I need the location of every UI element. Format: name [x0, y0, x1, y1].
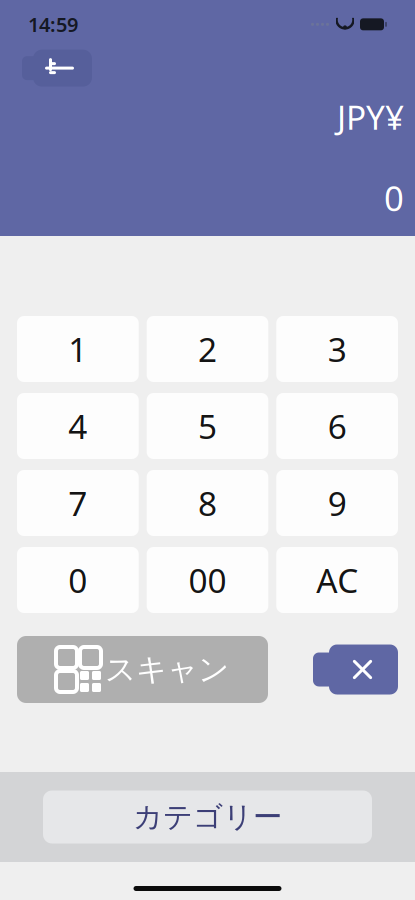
button[interactable]: カテゴリー [43, 790, 372, 843]
staticText: 2 [198, 327, 217, 371]
button[interactable]: Back [19, 50, 92, 87]
button[interactable]: 5 [147, 393, 268, 459]
staticText: AC [316, 558, 358, 602]
staticText: スキャン [105, 651, 229, 688]
button[interactable]: 0 [17, 547, 139, 613]
button[interactable]: 4 [17, 393, 139, 459]
staticText: 7 [68, 481, 87, 525]
staticText: 6 [328, 404, 347, 448]
staticText: 1 [68, 327, 87, 371]
button[interactable]: 3 [276, 316, 398, 382]
button[interactable]: 6 [276, 393, 398, 459]
button[interactable]: スキャン [17, 636, 268, 703]
staticText: JPY¥ [337, 95, 404, 139]
staticText: 0 [384, 175, 404, 221]
button[interactable]: 1 [17, 316, 139, 382]
button[interactable]: Delete [313, 644, 398, 694]
staticText: 3 [328, 327, 347, 371]
staticText: 5 [198, 404, 217, 448]
staticText: 00 [188, 558, 226, 602]
staticText: 14:59 [28, 11, 78, 38]
staticText: 8 [198, 481, 217, 525]
staticText: 0 [68, 558, 87, 602]
button[interactable]: 2 [147, 316, 268, 382]
staticText: カテゴリー [133, 799, 282, 835]
staticText: 9 [328, 481, 347, 525]
staticText: 4 [68, 404, 87, 448]
button[interactable]: 8 [147, 470, 268, 536]
button[interactable]: 9 [276, 470, 398, 536]
button[interactable]: 00 [147, 547, 268, 613]
button[interactable]: 7 [17, 470, 139, 536]
button[interactable]: AC [276, 547, 398, 613]
